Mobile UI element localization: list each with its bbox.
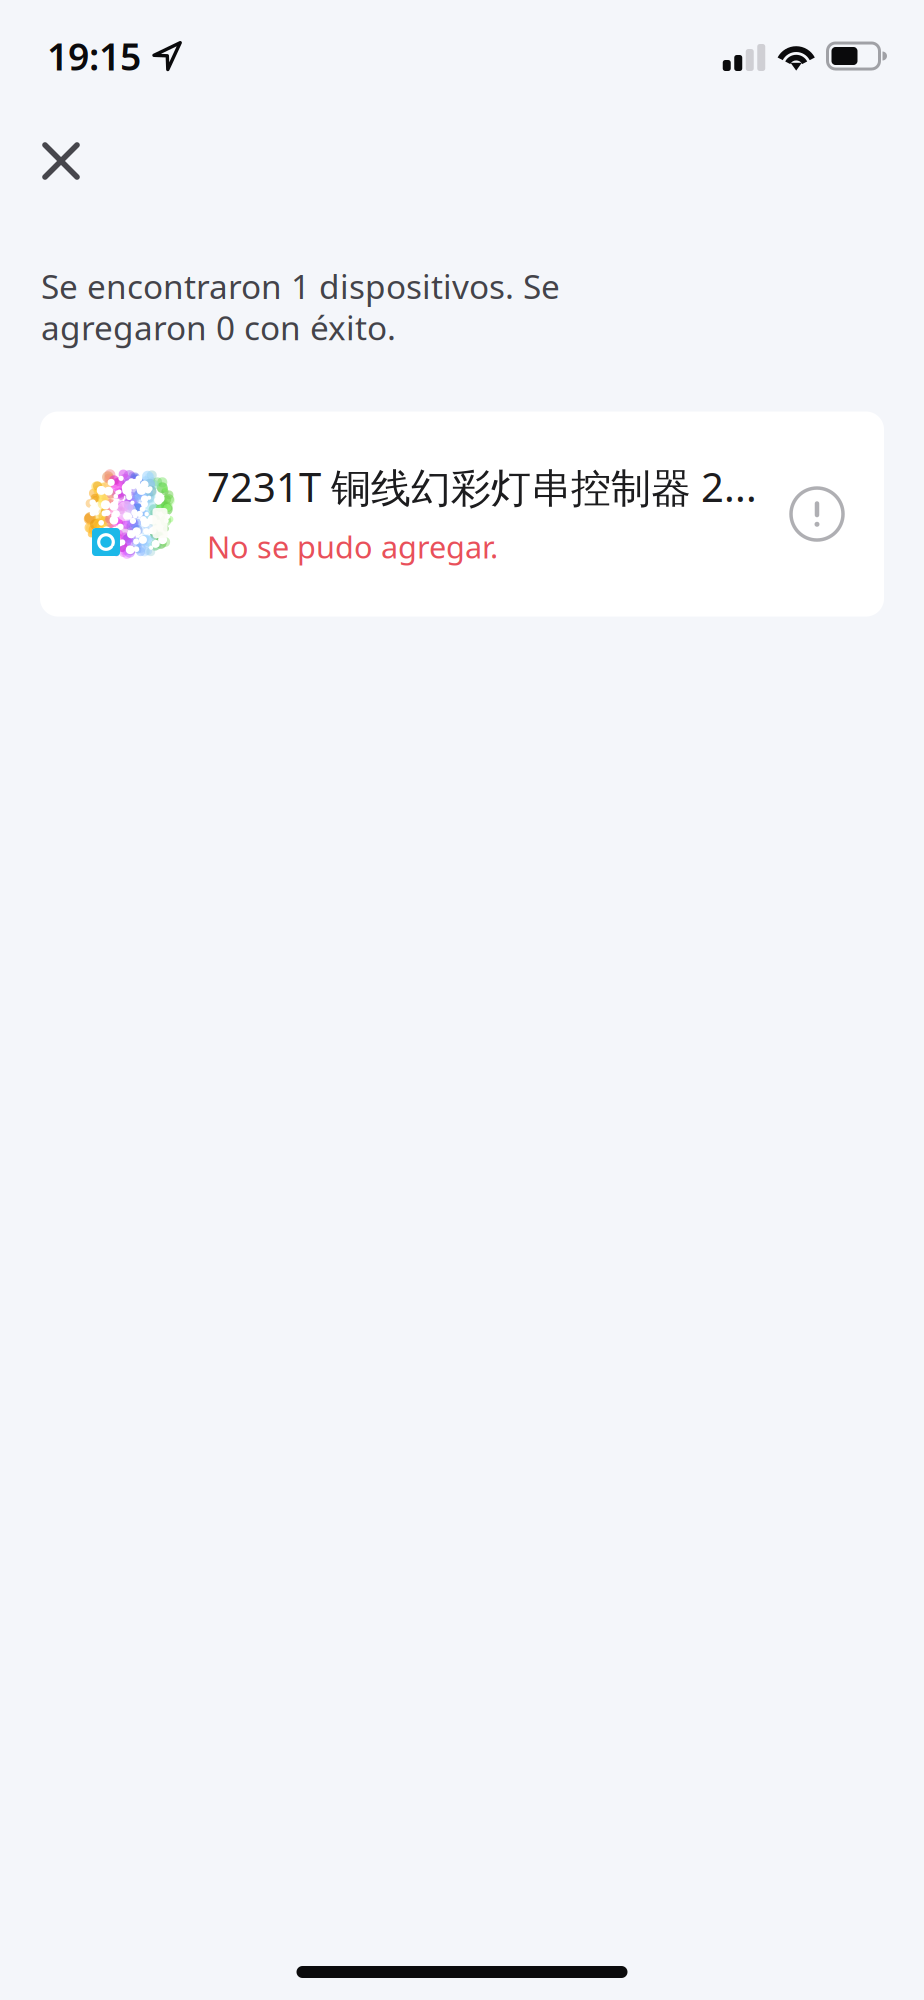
button[interactable]: Close bbox=[0, 71, 80, 200]
staticText: Se encontraron 1 dispositivos. Se agrega… bbox=[41, 264, 560, 349]
button[interactable]: 7231T 铜线幻彩灯串控制器 2... bbox=[40, 411, 884, 616]
staticText: 19:15 bbox=[47, 31, 141, 81]
staticText: No se pudo agregar. bbox=[207, 526, 498, 567]
staticText: 7231T 铜线幻彩灯串控制器 2... bbox=[207, 460, 757, 513]
